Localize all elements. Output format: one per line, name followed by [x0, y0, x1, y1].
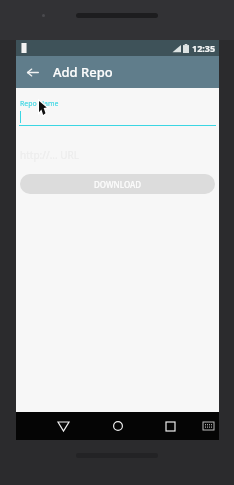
staticText: http://... URL	[20, 148, 80, 162]
button[interactable]: Navigate up	[16, 56, 48, 88]
staticText: Add Repo	[53, 63, 113, 81]
button[interactable]: Change keyboard	[199, 417, 217, 435]
staticText: 12:35	[192, 42, 216, 54]
button[interactable]: Back	[52, 415, 74, 437]
button[interactable]: Home	[107, 415, 129, 437]
button[interactable]: Recent apps	[159, 415, 181, 437]
button[interactable]: DOWNLOAD	[20, 174, 215, 194]
staticText: Repo Name	[20, 99, 59, 109]
staticText: DOWNLOAD	[94, 179, 142, 190]
button[interactable]: Repo Name	[16, 98, 219, 132]
